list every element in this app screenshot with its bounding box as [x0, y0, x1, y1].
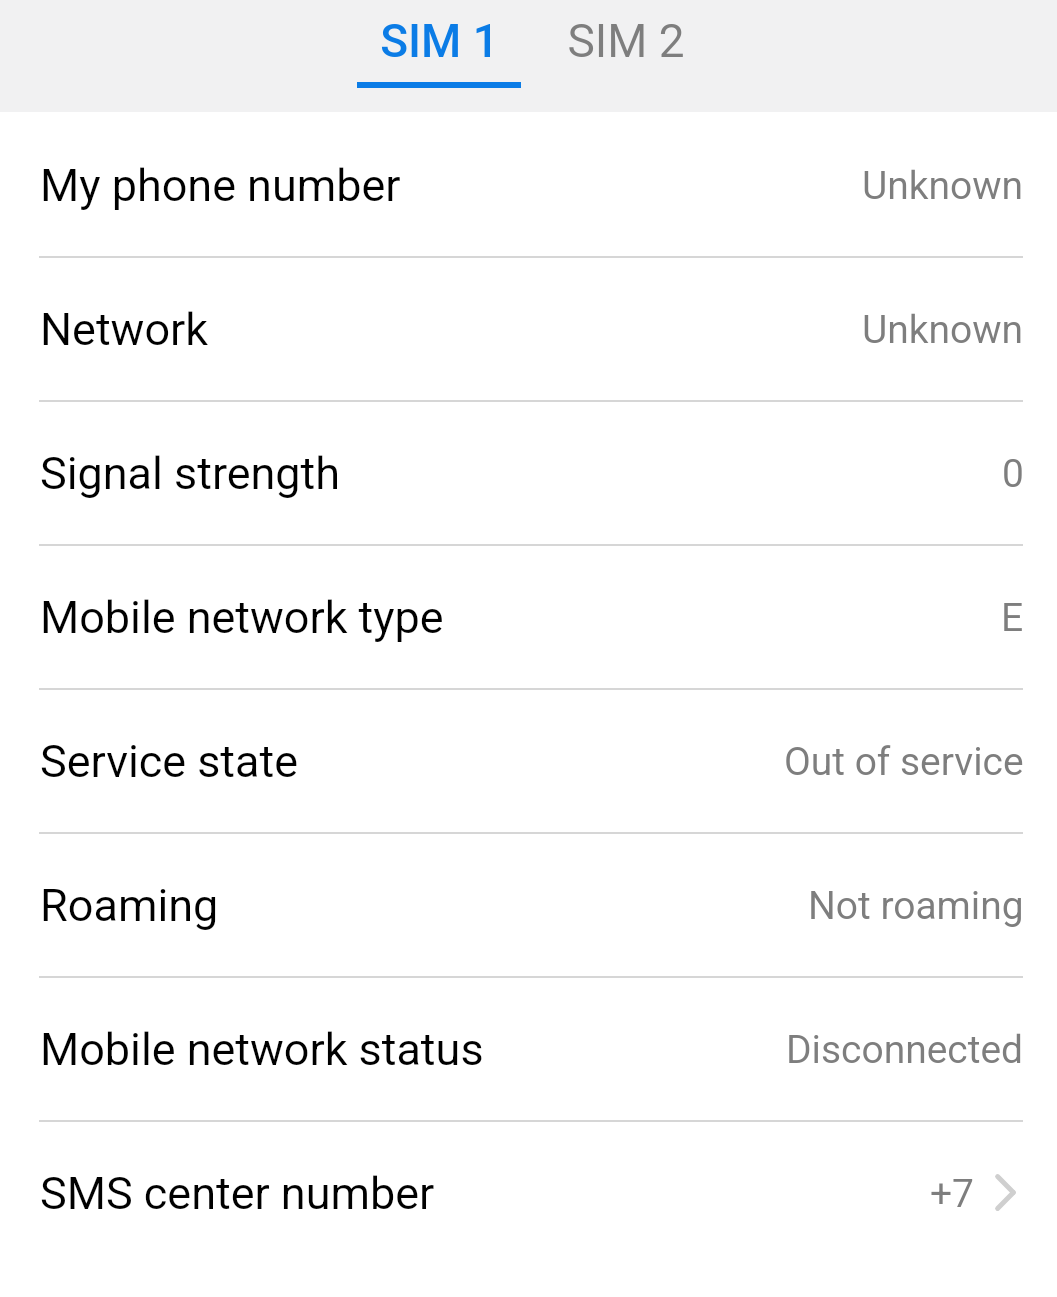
button[interactable]: My phone number [0, 112, 1057, 256]
staticText: Mobile network type [40, 591, 444, 644]
staticText: E [1001, 595, 1024, 641]
button[interactable]: SIM 2 [536, 0, 716, 112]
button[interactable]: Signal strength [0, 400, 1057, 544]
staticText: 0 [1002, 451, 1024, 497]
staticText: Out of service [784, 739, 1024, 785]
button[interactable]: SMS center number [0, 1120, 1057, 1264]
button[interactable]: Roaming [0, 832, 1057, 976]
staticText: Service state [40, 735, 299, 788]
staticText: Not roaming [808, 883, 1024, 929]
button[interactable]: Mobile network status [0, 976, 1057, 1120]
staticText: My phone number [40, 159, 401, 212]
staticText: Disconnected [786, 1027, 1024, 1073]
staticText: Roaming [40, 879, 219, 932]
other: Open SMS center number [995, 1174, 1016, 1211]
staticText: SIM 2 [567, 14, 685, 68]
button[interactable]: Service state [0, 688, 1057, 832]
staticText: +7 [930, 1171, 974, 1217]
staticText: SMS center number [40, 1167, 435, 1220]
button[interactable]: SIM 1 [342, 0, 536, 112]
button[interactable]: Mobile network type [0, 544, 1057, 688]
button[interactable]: Network [0, 256, 1057, 400]
staticText: Mobile network status [40, 1023, 484, 1076]
staticText: Signal strength [40, 447, 341, 500]
staticText: Unknown [862, 163, 1024, 209]
staticText: SIM 1 [380, 14, 499, 68]
staticText: Network [40, 303, 208, 356]
staticText: Unknown [862, 307, 1024, 353]
